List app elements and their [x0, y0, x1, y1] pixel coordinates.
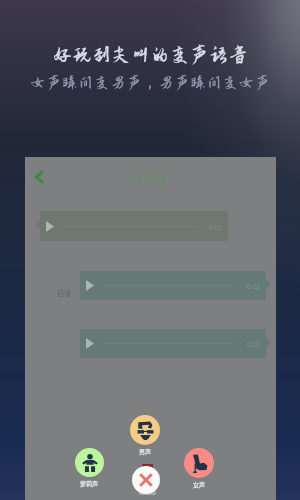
button[interactable]: Play voice message	[80, 329, 266, 358]
staticText: 张亚俊	[132, 170, 169, 187]
button[interactable]: Close	[132, 466, 160, 494]
staticText: 0:02	[247, 281, 260, 290]
staticText: 0:02	[209, 222, 222, 231]
staticText: 女声瞬间变男声，男声瞬间变女声	[30, 74, 271, 90]
button[interactable]: Play voice message	[40, 211, 228, 241]
staticText: 萝莉声	[80, 479, 99, 488]
staticText: 女声	[193, 480, 206, 489]
button[interactable]: 女声	[179, 448, 219, 489]
staticText: 0:02	[247, 339, 260, 348]
staticText: 已读	[57, 288, 71, 298]
button[interactable]: 萝莉声	[69, 448, 109, 488]
staticText: 好玩到尖叫的变声语音	[53, 45, 248, 66]
staticText: 男声	[139, 447, 152, 456]
button[interactable]: Back	[25, 163, 53, 191]
button[interactable]: Play voice message	[80, 271, 266, 300]
button[interactable]: 男声	[125, 415, 165, 456]
